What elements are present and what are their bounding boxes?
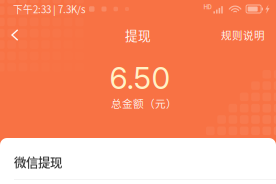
staticText: 提现 xyxy=(125,26,151,44)
button[interactable]: 微信提现 xyxy=(0,138,276,180)
staticText: 总金额（元） xyxy=(111,95,177,111)
button[interactable]: 规则说明 xyxy=(216,21,270,49)
staticText: HD xyxy=(204,3,212,11)
staticText: 下午2:33 | 7.3K/s xyxy=(13,2,86,16)
staticText: 6.50 xyxy=(109,60,170,96)
button[interactable]: Back xyxy=(0,21,28,49)
staticText: 规则说明 xyxy=(221,27,265,43)
staticText: 微信提现 xyxy=(14,153,62,171)
